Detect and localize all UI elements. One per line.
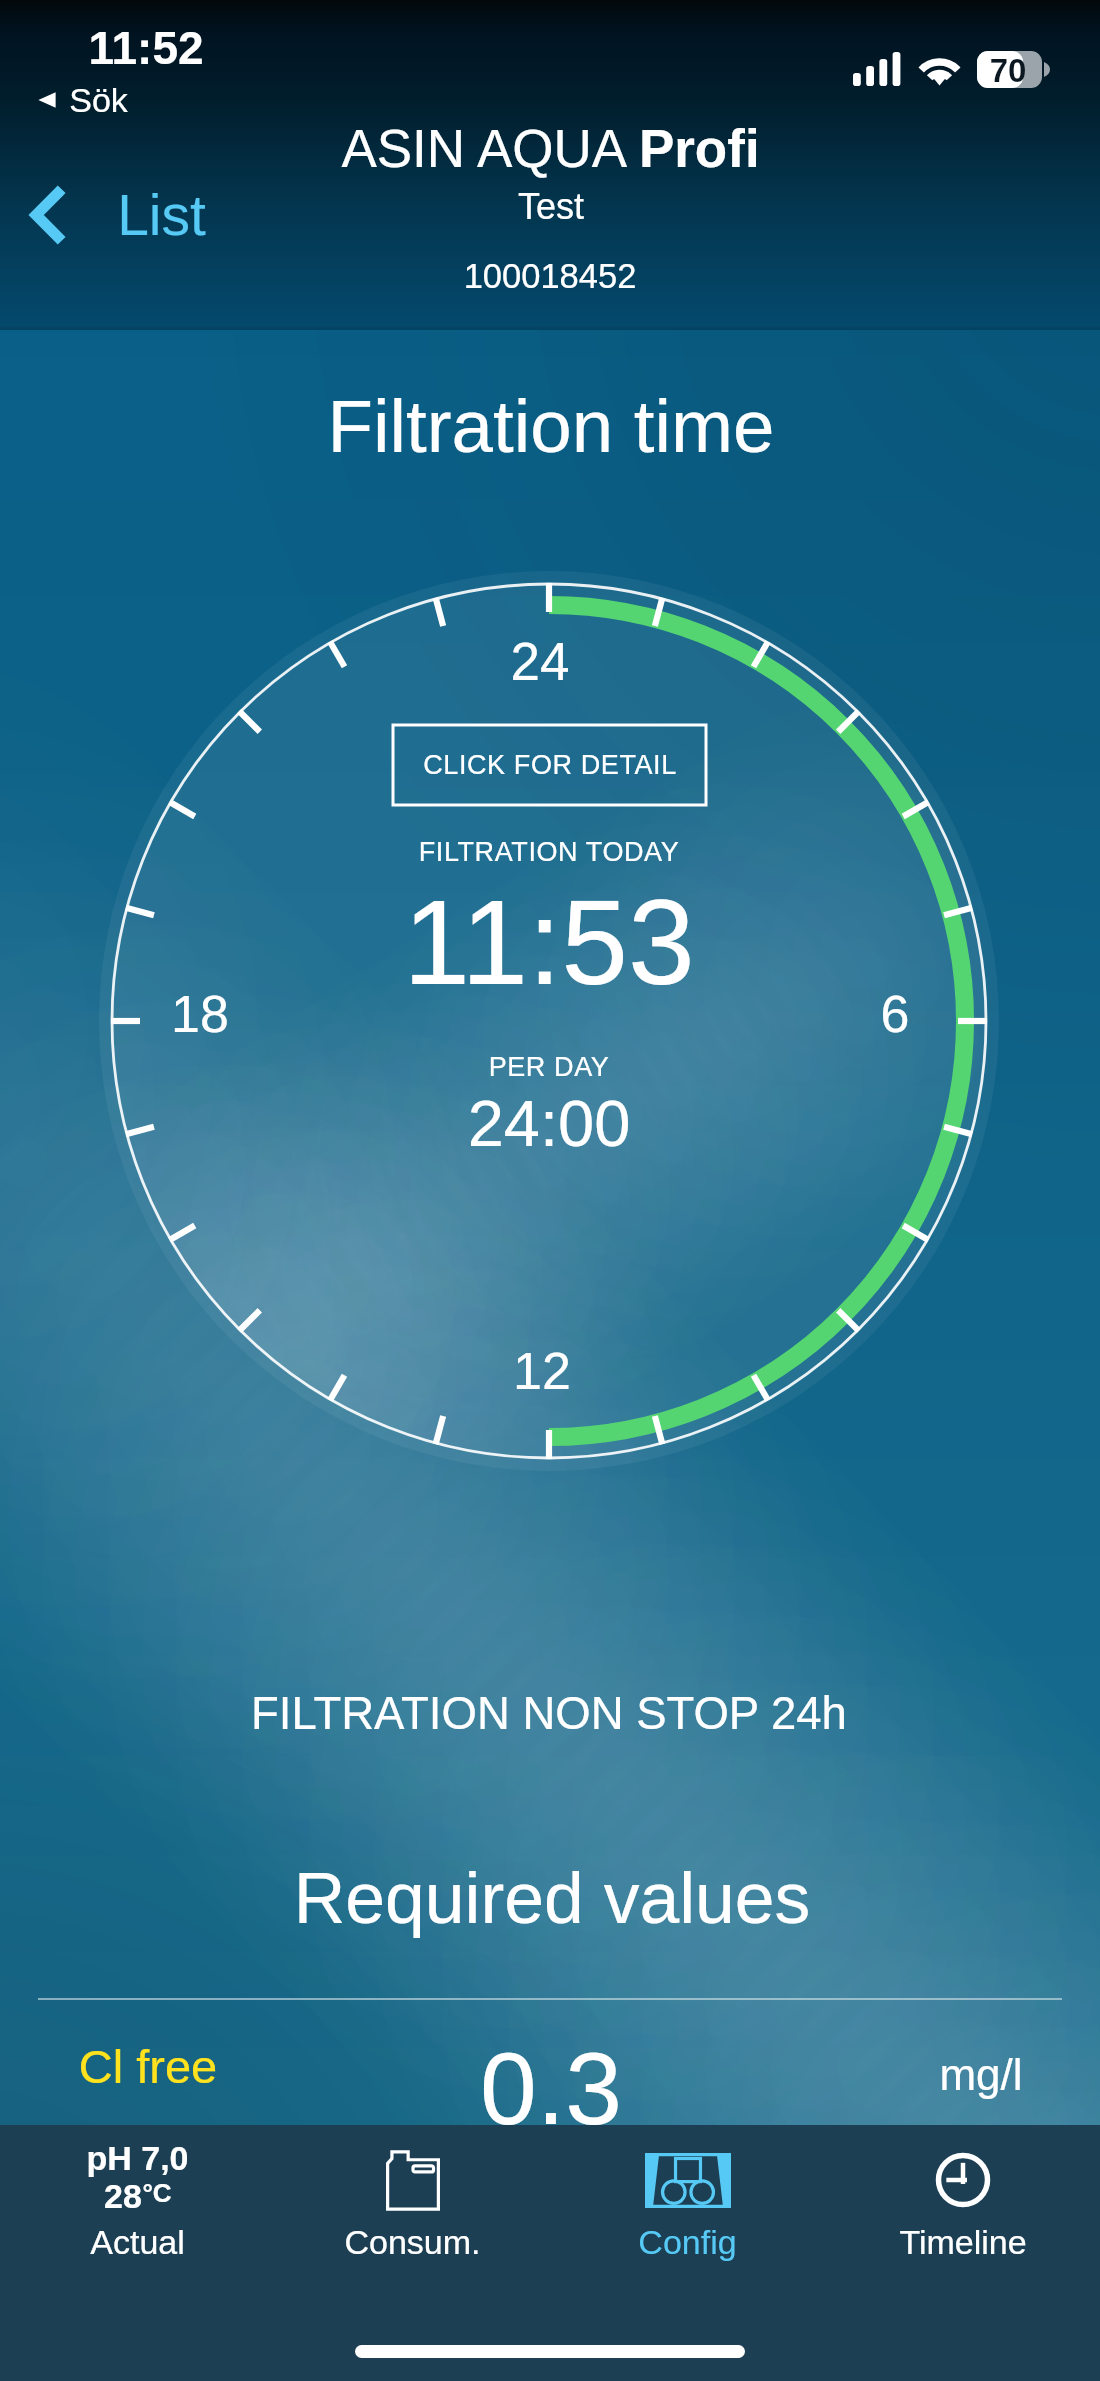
staticText: 28: [104, 2177, 142, 2215]
staticText: 11:53: [289, 875, 809, 1009]
staticText: Timeline: [899, 2223, 1027, 2261]
staticText: Test: [401, 186, 701, 226]
staticText: 24: [460, 632, 620, 691]
staticText: 0.3: [391, 2032, 711, 2146]
staticText: pH 7,0: [86, 2139, 189, 2177]
button[interactable]: Consum.: [275, 2125, 550, 2275]
staticText: Filtration time: [171, 385, 931, 468]
other: Config: [645, 2153, 731, 2208]
button[interactable]: Timeline: [825, 2125, 1100, 2275]
staticText: Config: [638, 2223, 737, 2261]
staticText: °C: [142, 2178, 172, 2207]
staticText: 24:00: [369, 1087, 729, 1160]
staticText: PER DAY: [369, 1052, 729, 1082]
staticText: List: [117, 183, 206, 247]
staticText: CLICK FOR DETAIL: [423, 750, 677, 780]
staticText: Required values: [172, 1858, 932, 1938]
button[interactable]: pH 7,0: [0, 2125, 275, 2275]
staticText: FILTRATION NON STOP 24h: [99, 1688, 999, 1739]
staticText: 11:52: [16, 22, 276, 73]
staticText: Consum.: [344, 2223, 481, 2261]
button[interactable]: Back to List: [29, 183, 206, 247]
staticText: 18: [120, 985, 280, 1043]
other: Timeline: [935, 2152, 991, 2208]
staticText: Actual: [90, 2223, 185, 2261]
staticText: Cl free: [0, 2040, 298, 2093]
staticText: 12: [462, 1342, 622, 1400]
staticText: 6: [845, 985, 945, 1043]
staticText: ASIN AQUA Profi: [341, 119, 760, 178]
button[interactable]: CLICK FOR DETAIL: [393, 725, 706, 805]
staticText: 70: [948, 52, 1068, 89]
staticText: FILTRATION TODAY: [289, 837, 809, 867]
staticText: mg/l: [871, 2050, 1091, 2099]
staticText: Sök: [69, 81, 128, 119]
staticText: 100018452: [340, 257, 760, 296]
button[interactable]: Config: [550, 2125, 825, 2275]
